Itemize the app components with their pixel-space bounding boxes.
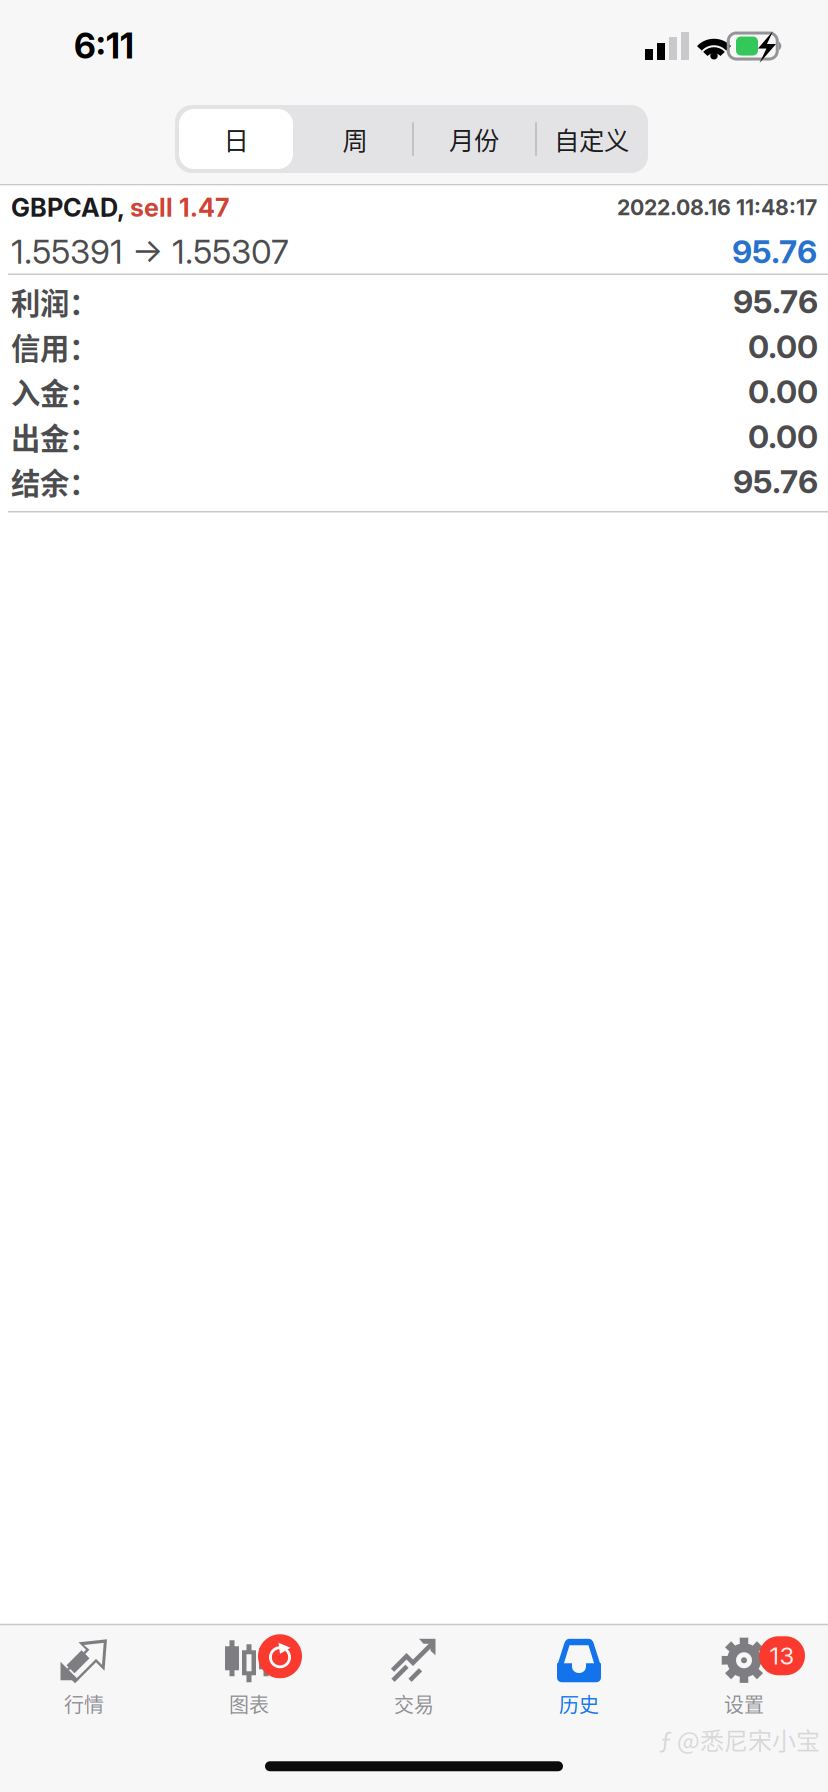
staticText: 13 <box>769 1641 794 1670</box>
button[interactable]: 13 <box>661 1625 826 1721</box>
staticText: 信用： <box>11 325 98 368</box>
staticText: 0.00 <box>748 327 818 366</box>
staticText: 0.00 <box>748 417 818 456</box>
button[interactable]: 图表 <box>166 1625 331 1721</box>
button[interactable]: 交易 <box>331 1625 496 1721</box>
button[interactable]: GBPCAD, <box>0 185 828 273</box>
staticText: 出金： <box>11 415 98 458</box>
staticText: 结余： <box>11 460 98 503</box>
staticText: 日 <box>223 121 248 157</box>
staticText: 6:11 <box>74 25 134 67</box>
staticText: 入金： <box>11 370 98 413</box>
button[interactable]: 行情 <box>1 1625 166 1721</box>
staticText: sell 1.47 <box>130 192 230 223</box>
staticText: 行情 <box>64 1689 104 1718</box>
staticText: 设置 <box>724 1689 764 1718</box>
staticText: GBPCAD, <box>11 192 130 223</box>
staticText: 95.76 <box>733 282 818 321</box>
button[interactable]: 历史 <box>496 1625 661 1721</box>
staticText: 95.76 <box>732 232 817 271</box>
staticText: 0.00 <box>748 372 818 411</box>
button[interactable]: 自定义 <box>535 105 648 173</box>
staticText: 2022.08.16 11:48:17 <box>617 195 817 220</box>
staticText: 周 <box>342 121 367 157</box>
staticText: 95.76 <box>733 462 818 501</box>
staticText: 历史 <box>559 1689 599 1718</box>
staticText: 交易 <box>394 1689 434 1718</box>
staticText: ƒ @悉尼宋小宝 <box>659 1722 820 1757</box>
staticText: 利润： <box>11 280 98 323</box>
button[interactable]: 周 <box>297 105 413 173</box>
staticText: 1.55391 → 1.55307 <box>11 231 289 272</box>
button[interactable]: 日 <box>175 105 297 173</box>
button[interactable]: 月份 <box>413 105 535 173</box>
staticText: 月份 <box>449 121 499 157</box>
staticText: 自定义 <box>554 121 629 157</box>
staticText: 图表 <box>229 1689 269 1718</box>
